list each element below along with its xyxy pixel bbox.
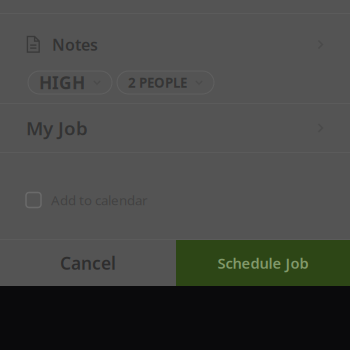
staticText: Notes xyxy=(52,34,98,55)
button[interactable]: My Job xyxy=(0,104,350,152)
button[interactable]: 2 PEOPLE xyxy=(117,71,214,94)
staticText: My Job xyxy=(26,116,88,140)
button[interactable]: Cancel xyxy=(0,240,176,286)
staticText: HIGH xyxy=(39,71,85,94)
button[interactable]: HIGH xyxy=(28,71,112,94)
button[interactable]: Notes xyxy=(0,27,350,62)
staticText: Add to calendar xyxy=(51,191,148,209)
staticText: Schedule Job xyxy=(217,253,308,273)
button[interactable]: Schedule Job xyxy=(176,240,350,286)
staticText: 2 PEOPLE xyxy=(128,74,187,91)
staticText: Cancel xyxy=(60,251,116,274)
button[interactable]: Add to calendar xyxy=(0,189,350,211)
